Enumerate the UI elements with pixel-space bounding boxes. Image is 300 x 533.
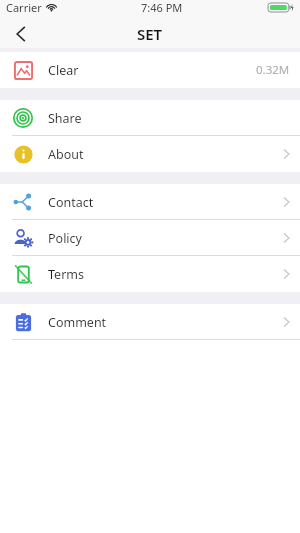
staticText: 0.32M	[256, 62, 290, 78]
staticText: SET	[137, 24, 163, 44]
staticText: Share	[48, 110, 82, 127]
staticText: Clear	[48, 62, 79, 79]
button[interactable]: Policy	[0, 220, 300, 256]
staticText: Carrier	[6, 0, 42, 15]
button[interactable]: Back	[0, 20, 42, 48]
button[interactable]: Share	[0, 100, 300, 136]
staticText: Contact	[48, 194, 94, 211]
button[interactable]: Clear	[0, 52, 300, 88]
staticText: Comment	[48, 314, 107, 331]
staticText: Terms	[48, 266, 84, 283]
button[interactable]: Contact	[0, 184, 300, 220]
staticText: 7:46 PM	[141, 0, 183, 15]
staticText: About	[48, 146, 84, 163]
button[interactable]: Terms	[0, 256, 300, 292]
button[interactable]: Comment	[0, 304, 300, 340]
staticText: Policy	[48, 230, 82, 247]
button[interactable]: About	[0, 136, 300, 172]
